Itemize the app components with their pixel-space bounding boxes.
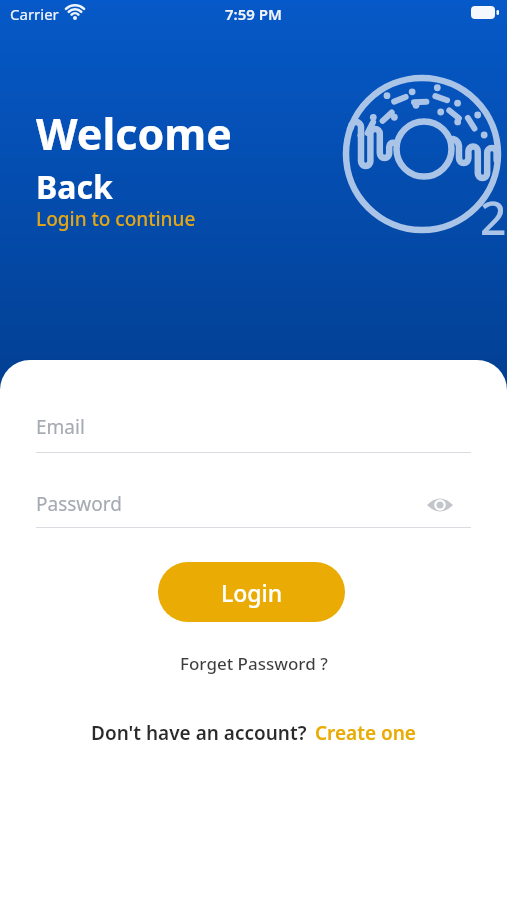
staticText: 2: [480, 186, 507, 249]
staticText: Don't have an account?: [91, 720, 307, 746]
staticText: Email: [36, 414, 85, 440]
button[interactable]: Create one: [315, 720, 416, 746]
staticText: Welcome: [36, 104, 232, 163]
staticText: Back: [36, 165, 113, 209]
staticText: Password: [36, 491, 122, 517]
staticText: Login: [221, 577, 283, 608]
staticText: Login to continue: [36, 206, 196, 232]
button[interactable]: Password: [36, 484, 471, 528]
staticText: 7:59 PM: [225, 4, 282, 24]
button[interactable]: Forget Password ?: [180, 652, 328, 675]
button[interactable]: Email: [36, 407, 471, 453]
button[interactable]: Login: [158, 562, 345, 622]
staticText: Carrier: [10, 4, 59, 24]
